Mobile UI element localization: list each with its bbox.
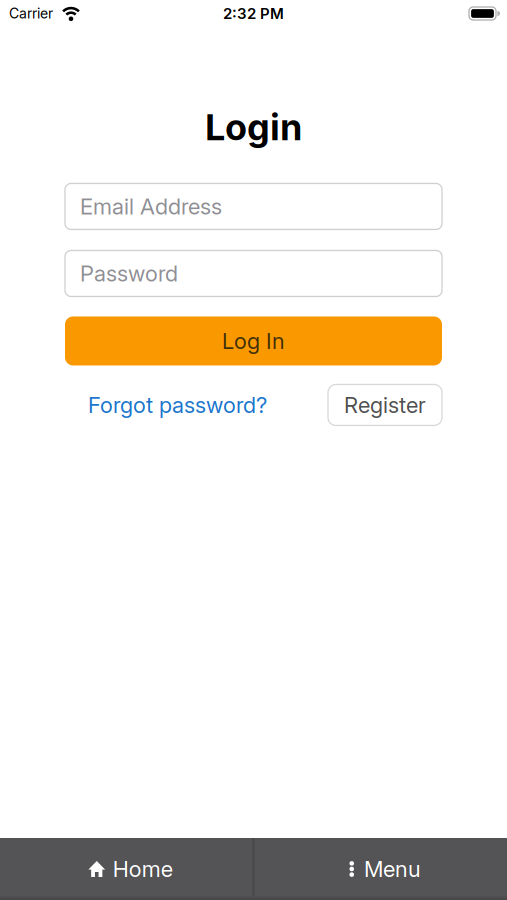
button[interactable]: Password — [65, 250, 442, 296]
button[interactable]: Menu — [254, 838, 507, 900]
staticText: 2:32 PM — [223, 5, 284, 22]
staticText: Register — [344, 392, 426, 418]
staticText: Forgot password? — [88, 392, 267, 418]
button[interactable]: Email Address — [65, 183, 442, 229]
staticText: Carrier — [9, 5, 53, 22]
button[interactable]: Log In — [65, 316, 442, 365]
staticText: Menu — [364, 856, 421, 882]
staticText: Home — [113, 856, 173, 882]
staticText: Password — [80, 260, 178, 286]
button[interactable]: Forgot password? — [65, 392, 267, 418]
staticText: Email Address — [80, 193, 222, 219]
staticText: Login — [205, 106, 302, 148]
button[interactable]: Register — [328, 384, 442, 425]
button[interactable]: Home — [0, 838, 252, 900]
staticText: Log In — [222, 328, 285, 354]
